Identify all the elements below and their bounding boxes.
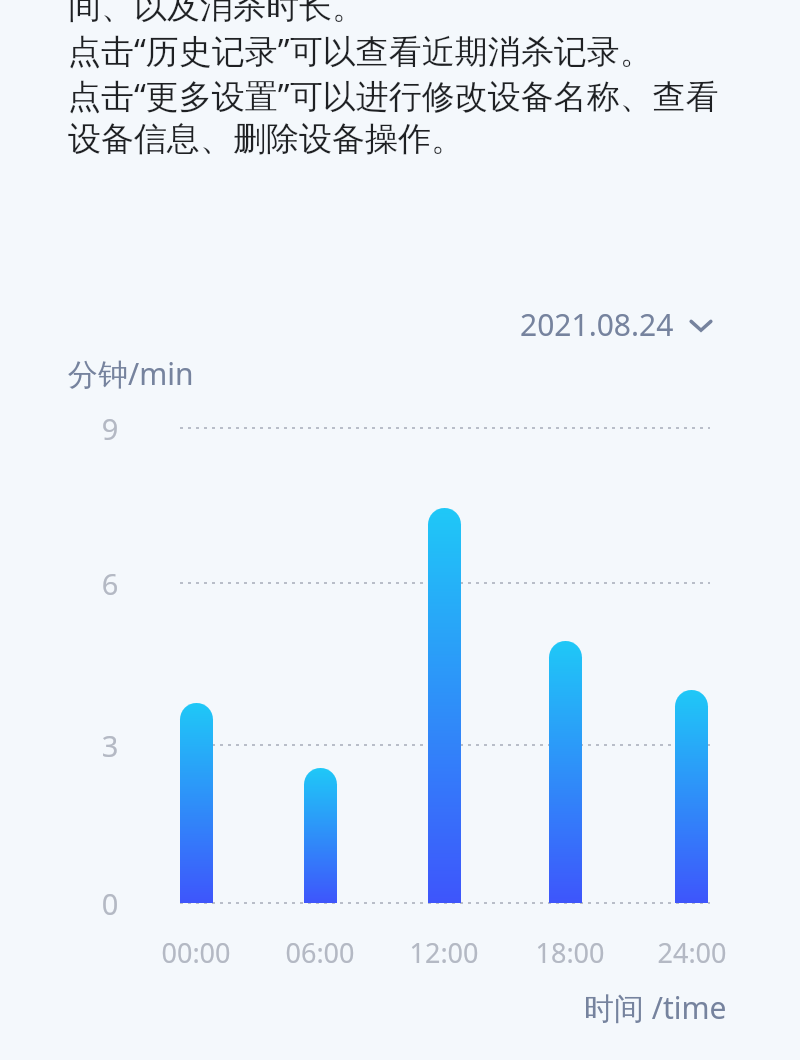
staticText: 间、以及消杀时长。 (68, 0, 365, 28)
staticText: 12:00 (384, 934, 504, 971)
staticText: 点击“历史记录”可以查看近期消杀记录。 (68, 28, 653, 73)
staticText: 时间 /time (584, 987, 727, 1028)
staticText: 点击“更多设置”可以进行修改设备名称、查看 (68, 73, 719, 118)
staticText: 06:00 (260, 934, 380, 971)
staticText: 3 (80, 726, 140, 765)
staticText: 9 (80, 409, 140, 448)
staticText: 6 (80, 564, 140, 603)
staticText: 18:00 (510, 934, 630, 971)
staticText: 0 (80, 884, 140, 923)
staticText: 设备信息、删除设备操作。 (68, 118, 464, 160)
staticText: 00:00 (136, 934, 256, 971)
button[interactable]: 2021.08.24 (514, 298, 720, 351)
staticText: 分钟/min (68, 353, 194, 394)
other: Choose date (688, 312, 714, 338)
staticText: 2021.08.24 (520, 304, 674, 345)
staticText: 24:00 (632, 934, 752, 971)
